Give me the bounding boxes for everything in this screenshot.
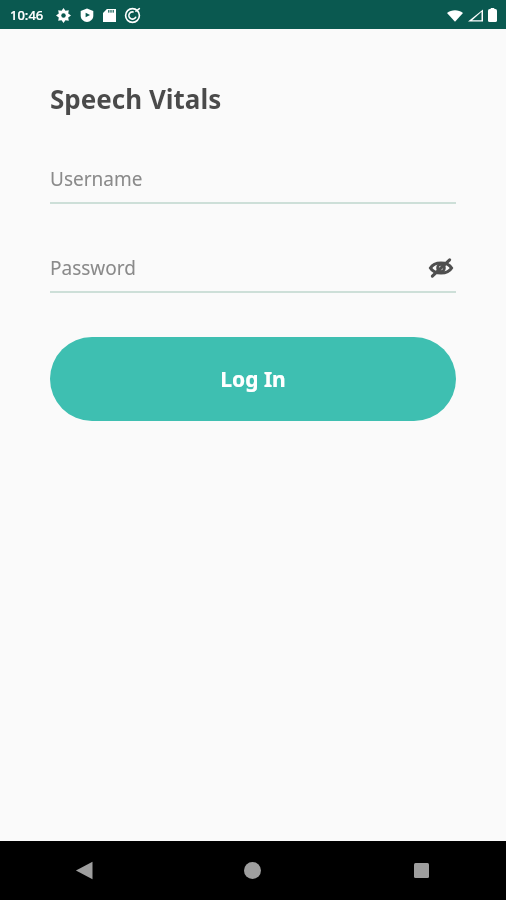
staticText: 10:46 xyxy=(10,6,44,24)
staticText: Speech Vitals xyxy=(50,81,222,116)
button[interactable]: Back xyxy=(0,841,168,900)
staticText: Password xyxy=(50,255,136,281)
button[interactable]: Recent apps xyxy=(337,841,506,900)
button[interactable]: Username xyxy=(50,163,456,204)
button[interactable]: Show password xyxy=(426,253,456,283)
staticText: Username xyxy=(50,166,143,192)
staticText: Log In xyxy=(220,365,286,394)
button[interactable]: Log In xyxy=(50,337,456,421)
button[interactable]: Home xyxy=(168,841,337,900)
button[interactable]: Password xyxy=(50,252,456,293)
